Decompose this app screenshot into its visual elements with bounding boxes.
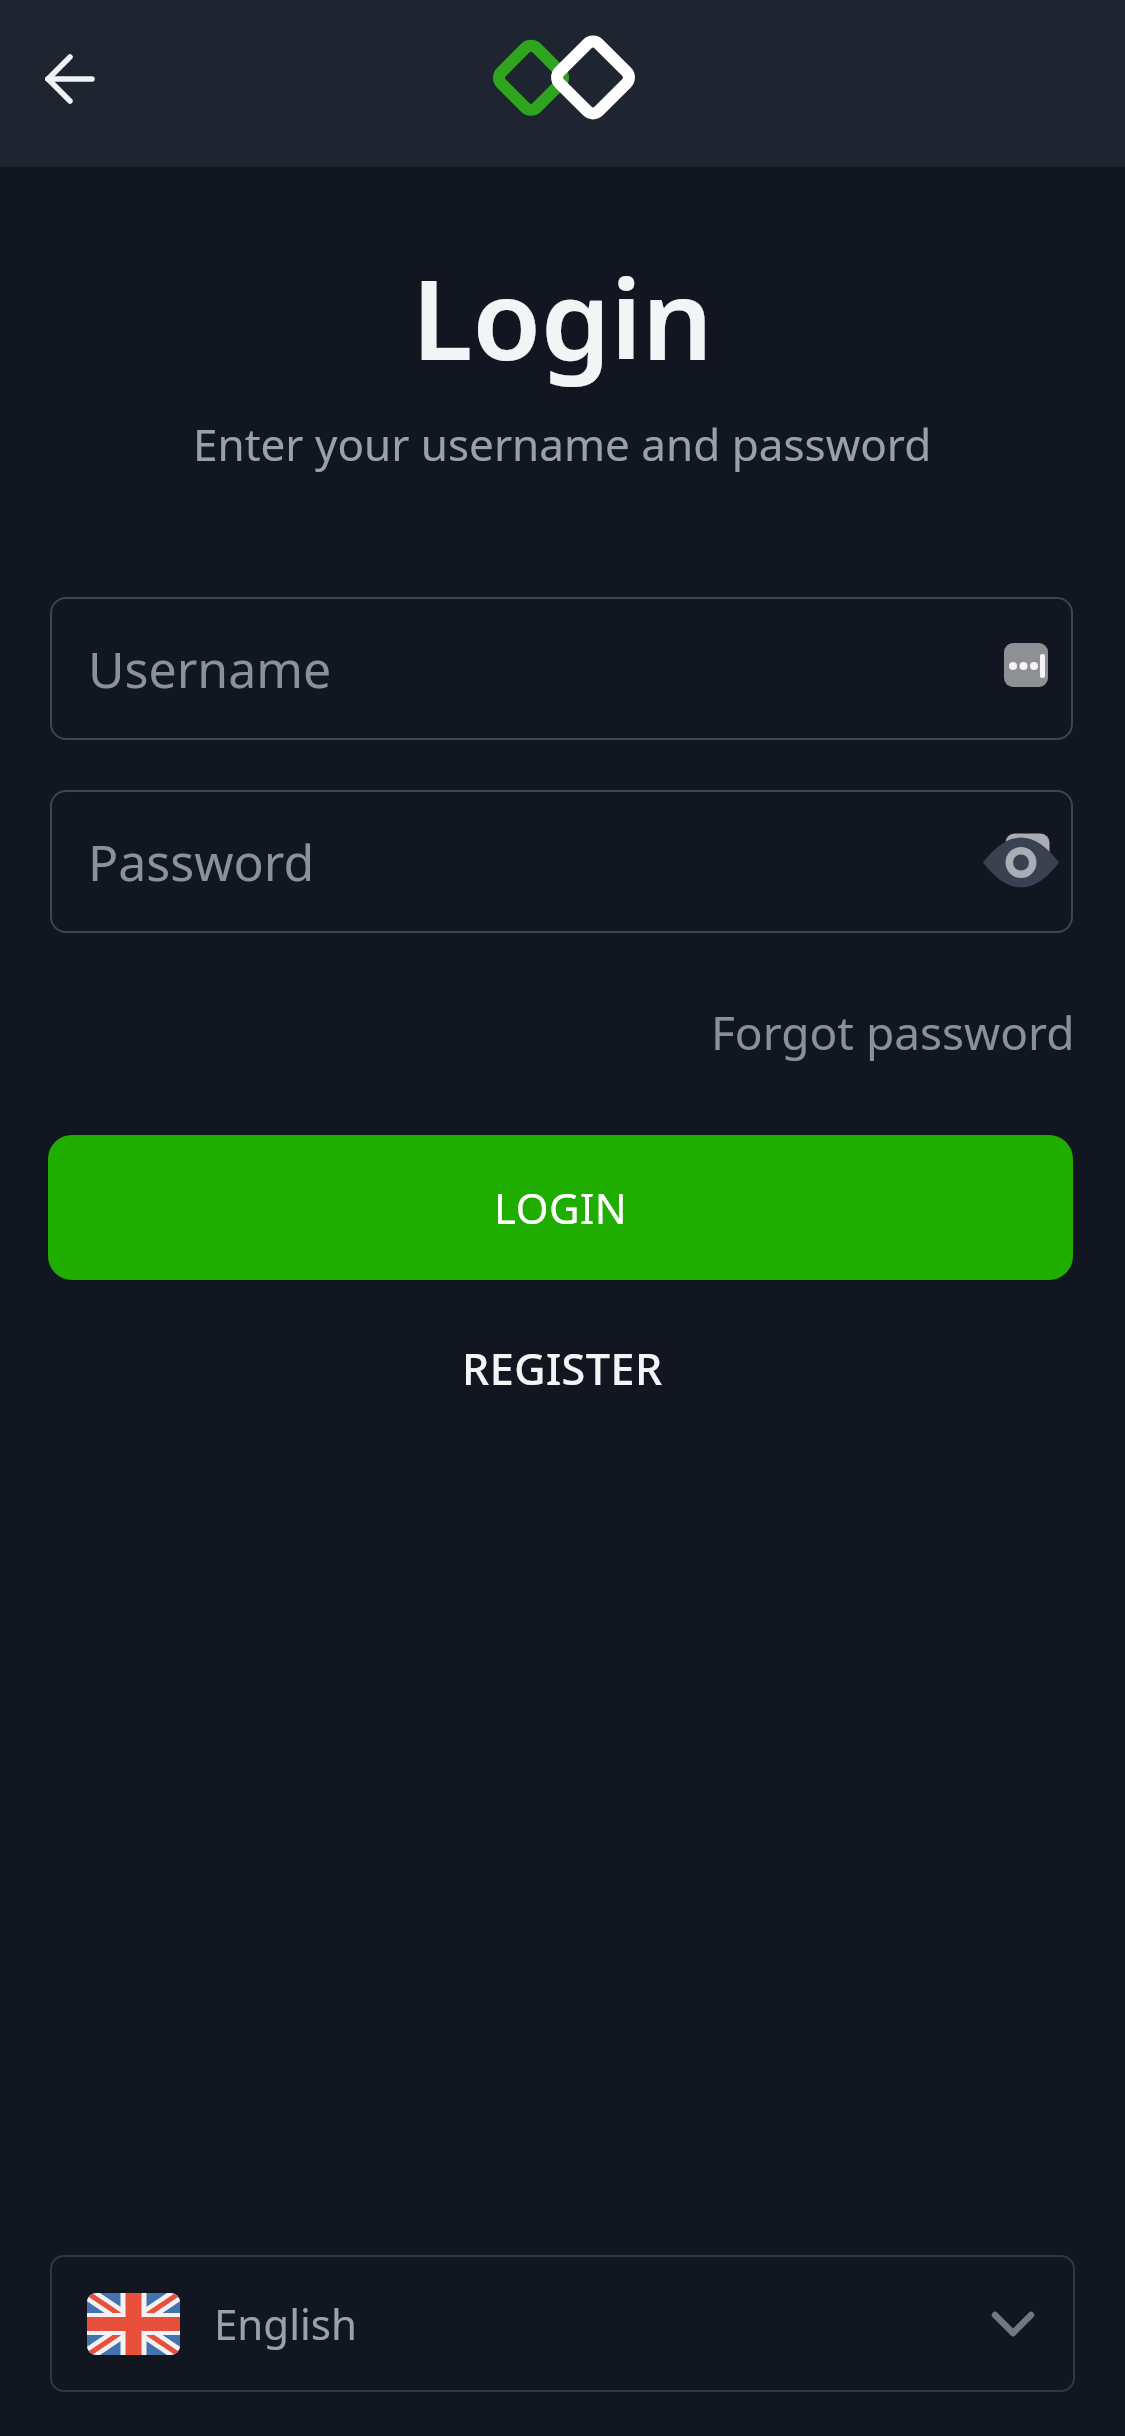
staticText: English	[214, 2295, 357, 2352]
staticText: LOGIN	[494, 1179, 628, 1236]
button[interactable]	[22, 31, 118, 127]
button[interactable]: LOGIN	[48, 1135, 1073, 1280]
button[interactable]: REGISTER	[462, 1339, 663, 1398]
button[interactable]: Username	[50, 597, 1073, 740]
button[interactable]: Forgot password	[711, 1001, 1075, 1064]
staticText: Login	[412, 241, 713, 392]
staticText: Username	[88, 635, 332, 703]
staticText: Enter your username and password	[193, 414, 932, 474]
staticText: Password	[88, 828, 315, 896]
button[interactable]: Password	[50, 790, 1073, 933]
button[interactable]: English	[50, 2255, 1075, 2392]
